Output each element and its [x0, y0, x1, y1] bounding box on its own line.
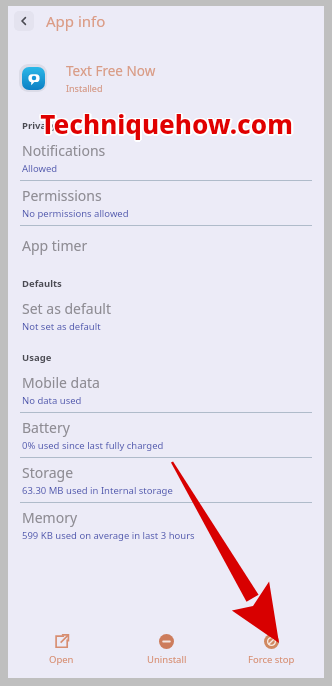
staticText: Set as default — [22, 299, 111, 318]
staticText: Permissions — [22, 186, 102, 205]
staticText: Techniquehow.com — [41, 105, 294, 140]
staticText: Techniquehow.com — [40, 108, 293, 143]
staticText: Mobile data — [22, 373, 100, 392]
staticText: 599 KB used on average in last 3 hours — [22, 529, 195, 542]
staticText: Techniquehow.com — [40, 105, 293, 140]
staticText: Not set as default — [22, 320, 101, 333]
staticText: Installed — [66, 82, 103, 94]
staticText: Techniquehow.com — [39, 105, 292, 140]
staticText: 0% used since last fully charged — [22, 439, 164, 452]
button[interactable]: Uninstall — [114, 634, 219, 666]
button[interactable]: Text Free Now — [8, 54, 324, 102]
other: Open — [54, 634, 69, 649]
button[interactable]: Back — [14, 11, 34, 31]
staticText: Privacy — [22, 119, 57, 132]
staticText: Notifications — [22, 141, 106, 160]
other: Uninstall — [159, 634, 174, 649]
staticText: App info — [46, 11, 106, 31]
button[interactable]: Storage — [8, 458, 324, 502]
staticText: Techniquehow.com — [39, 106, 292, 141]
staticText: Memory — [22, 508, 78, 527]
staticText: Uninstall — [147, 653, 187, 666]
staticText: Text Free Now — [66, 62, 156, 80]
staticText: App timer — [22, 236, 88, 255]
button[interactable]: Set as default — [8, 294, 324, 338]
staticText: Defaults — [22, 277, 62, 290]
button[interactable]: Open — [8, 634, 114, 666]
button[interactable]: App timer — [8, 226, 324, 264]
staticText: Open — [49, 653, 74, 666]
other: Force stop — [264, 634, 279, 649]
staticText: Techniquehow.com — [41, 107, 294, 142]
staticText: Techniquehow.com — [40, 106, 293, 141]
button[interactable]: Force stop — [219, 634, 324, 666]
staticText: Techniquehow.com — [42, 106, 295, 141]
staticText: Techniquehow.com — [39, 107, 292, 142]
button[interactable]: Mobile data — [8, 368, 324, 412]
staticText: No permissions allowed — [22, 207, 129, 220]
staticText: Storage — [22, 463, 74, 482]
staticText: Allowed — [22, 162, 58, 175]
staticText: No data used — [22, 394, 82, 407]
button[interactable]: Permissions — [8, 181, 324, 225]
staticText: Usage — [22, 351, 52, 364]
staticText: Battery — [22, 418, 70, 437]
button[interactable]: Notifications — [8, 136, 324, 180]
button[interactable]: Battery — [8, 413, 324, 457]
staticText: 63.30 MB used in Internal storage — [22, 484, 173, 497]
button[interactable]: Memory — [8, 503, 324, 547]
staticText: Force stop — [248, 653, 295, 666]
